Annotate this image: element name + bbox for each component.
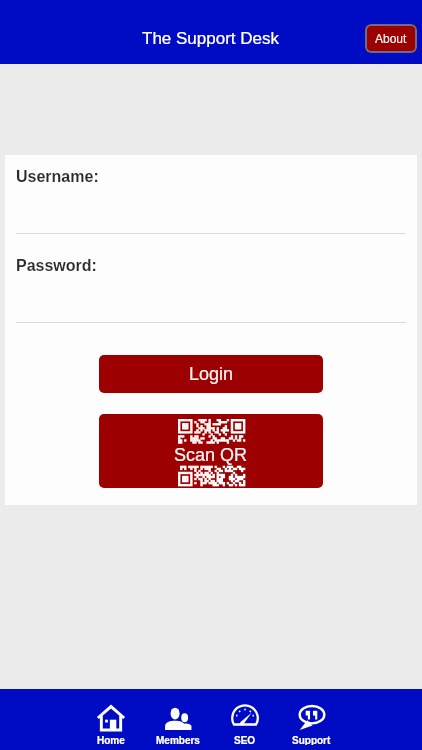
staticText: Home xyxy=(97,735,125,745)
button[interactable]: Support xyxy=(278,689,345,750)
button[interactable]: SEO xyxy=(211,689,278,750)
button[interactable]: About xyxy=(365,24,417,53)
staticText: The Support Desk xyxy=(142,29,280,48)
button[interactable]: Login xyxy=(99,355,323,393)
button[interactable]: Members xyxy=(144,689,211,750)
button[interactable]: Scan QR xyxy=(99,414,323,488)
staticText: Password: xyxy=(16,257,97,275)
staticText: About xyxy=(375,32,407,45)
button[interactable]: Home xyxy=(77,689,144,750)
staticText: Scan QR xyxy=(174,445,248,465)
staticText: Members xyxy=(156,735,200,745)
staticText: Support xyxy=(292,735,331,745)
staticText: SEO xyxy=(234,735,256,745)
staticText: Login xyxy=(189,364,234,384)
staticText: Username: xyxy=(16,168,99,186)
